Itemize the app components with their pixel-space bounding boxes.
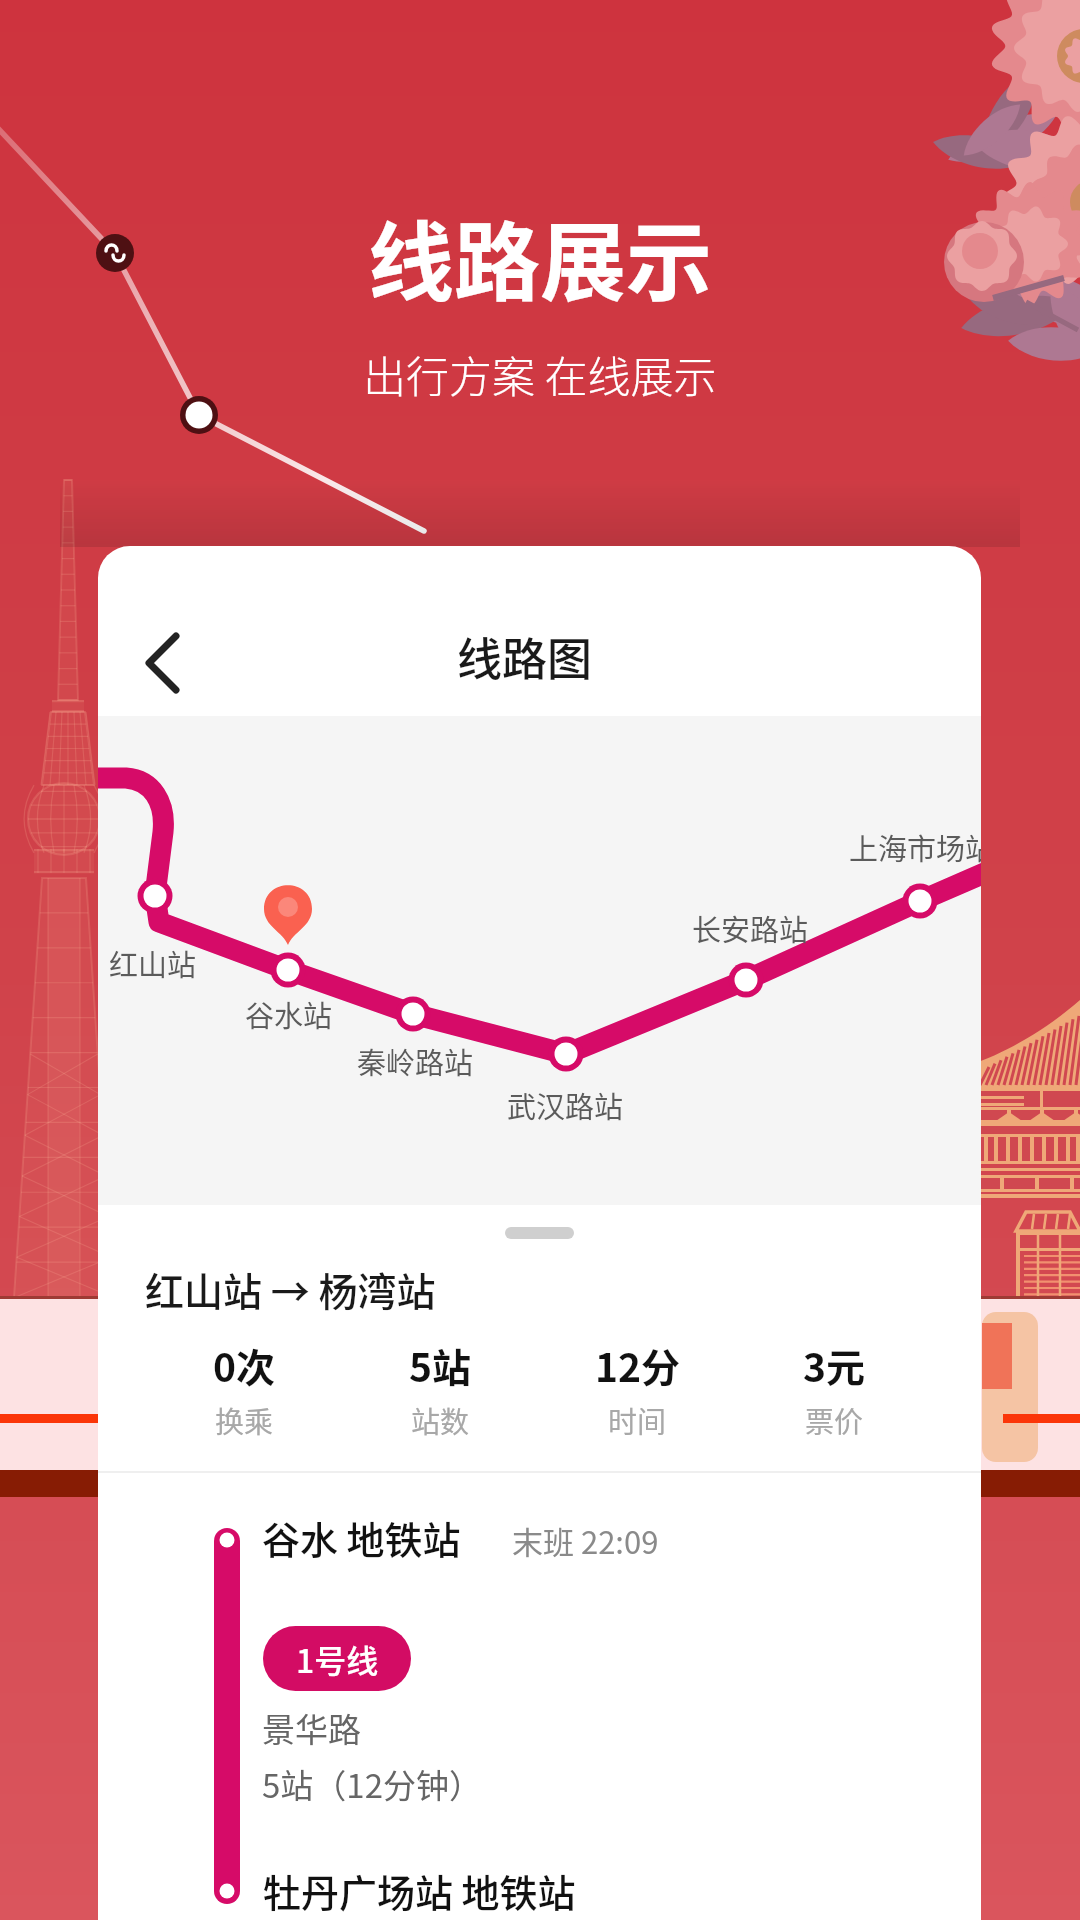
staticText: 1号线 <box>296 1636 379 1682</box>
staticText: 3元 <box>803 1337 866 1393</box>
staticText: 红山站 → 杨湾站 <box>145 1261 436 1317</box>
staticText: 5站（12分钟） <box>262 1760 482 1808</box>
staticText: 5站 <box>409 1337 472 1393</box>
button[interactable]: 1号线 <box>263 1626 411 1691</box>
staticText: 谷水站 <box>245 993 333 1035</box>
staticText: 秦岭路站 <box>357 1040 474 1082</box>
staticText: 站数 <box>411 1399 470 1441</box>
staticText: 0次 <box>213 1337 276 1393</box>
staticText: 谷水 地铁站 <box>262 1510 461 1565</box>
staticText: 牡丹广场站 地铁站 <box>263 1863 576 1918</box>
staticText: 换乘 <box>215 1399 274 1441</box>
staticText: 票价 <box>805 1399 864 1441</box>
button[interactable]: Back <box>129 629 195 695</box>
staticText: 时间 <box>608 1399 667 1441</box>
staticText: 线路展示 <box>368 194 712 319</box>
staticText: 长安路站 <box>692 907 809 949</box>
staticText: 12分 <box>595 1337 681 1393</box>
staticText: 红山站 <box>109 942 197 984</box>
staticText: 景华路 <box>262 1704 361 1752</box>
staticText: 末班 22:09 <box>512 1518 659 1563</box>
staticText: 线路图 <box>457 624 593 689</box>
staticText: 上海市场站 <box>849 826 981 868</box>
staticText: 出行方案 在线展示 <box>363 343 717 405</box>
staticText: 武汉路站 <box>507 1084 624 1126</box>
